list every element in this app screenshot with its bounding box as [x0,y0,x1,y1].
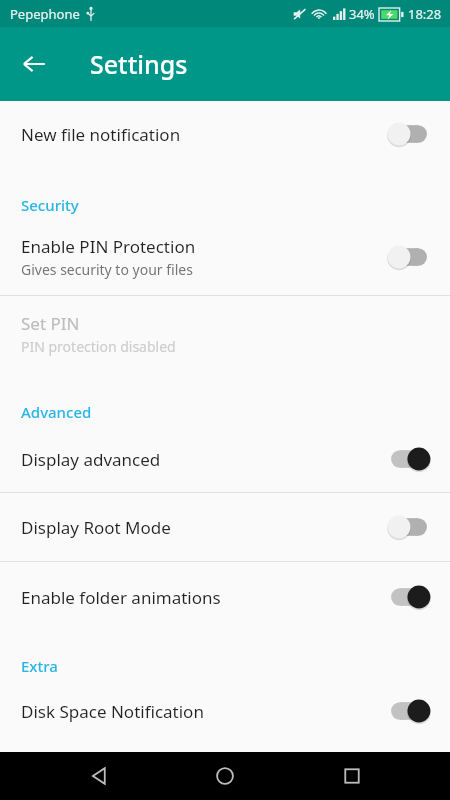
button[interactable]: Off [386,514,432,540]
button[interactable]: Disk Space Notification [0,680,450,742]
staticText: Pepephone [10,5,80,23]
button[interactable]: Display advanced [0,426,450,492]
button[interactable]: Back [8,38,60,90]
button[interactable]: Off [386,244,432,270]
staticText: Enable PIN Protection [21,235,196,258]
button[interactable]: Enable PIN Protection [0,219,450,295]
button[interactable]: On [386,584,432,610]
staticText: Security [21,195,79,215]
staticText: Display advanced [21,448,161,471]
button[interactable]: On [386,446,432,472]
button[interactable]: Enable folder animations [0,562,450,632]
staticText: Enable folder animations [21,586,221,609]
button[interactable]: Display Root Mode [0,493,450,561]
button[interactable]: Set PIN [0,296,450,372]
staticText: PIN protection disabled [21,337,176,356]
staticText: Disk Space Notification [21,700,204,723]
staticText: 18:28 [408,5,442,23]
button[interactable]: Recent apps [324,752,380,800]
staticText: Gives security to your files [21,260,193,279]
staticText: Settings [90,47,188,81]
button[interactable]: On [386,698,432,724]
button[interactable]: Off [386,121,432,147]
staticText: Display Root Mode [21,516,171,539]
staticText: 34% [349,5,375,23]
staticText: Set PIN [21,312,80,335]
button[interactable]: New file notification [0,101,450,167]
staticText: Advanced [21,402,92,422]
button[interactable]: Home [197,752,253,800]
staticText: Extra [21,656,58,676]
button[interactable]: Back [71,752,127,800]
staticText: New file notification [21,123,181,146]
